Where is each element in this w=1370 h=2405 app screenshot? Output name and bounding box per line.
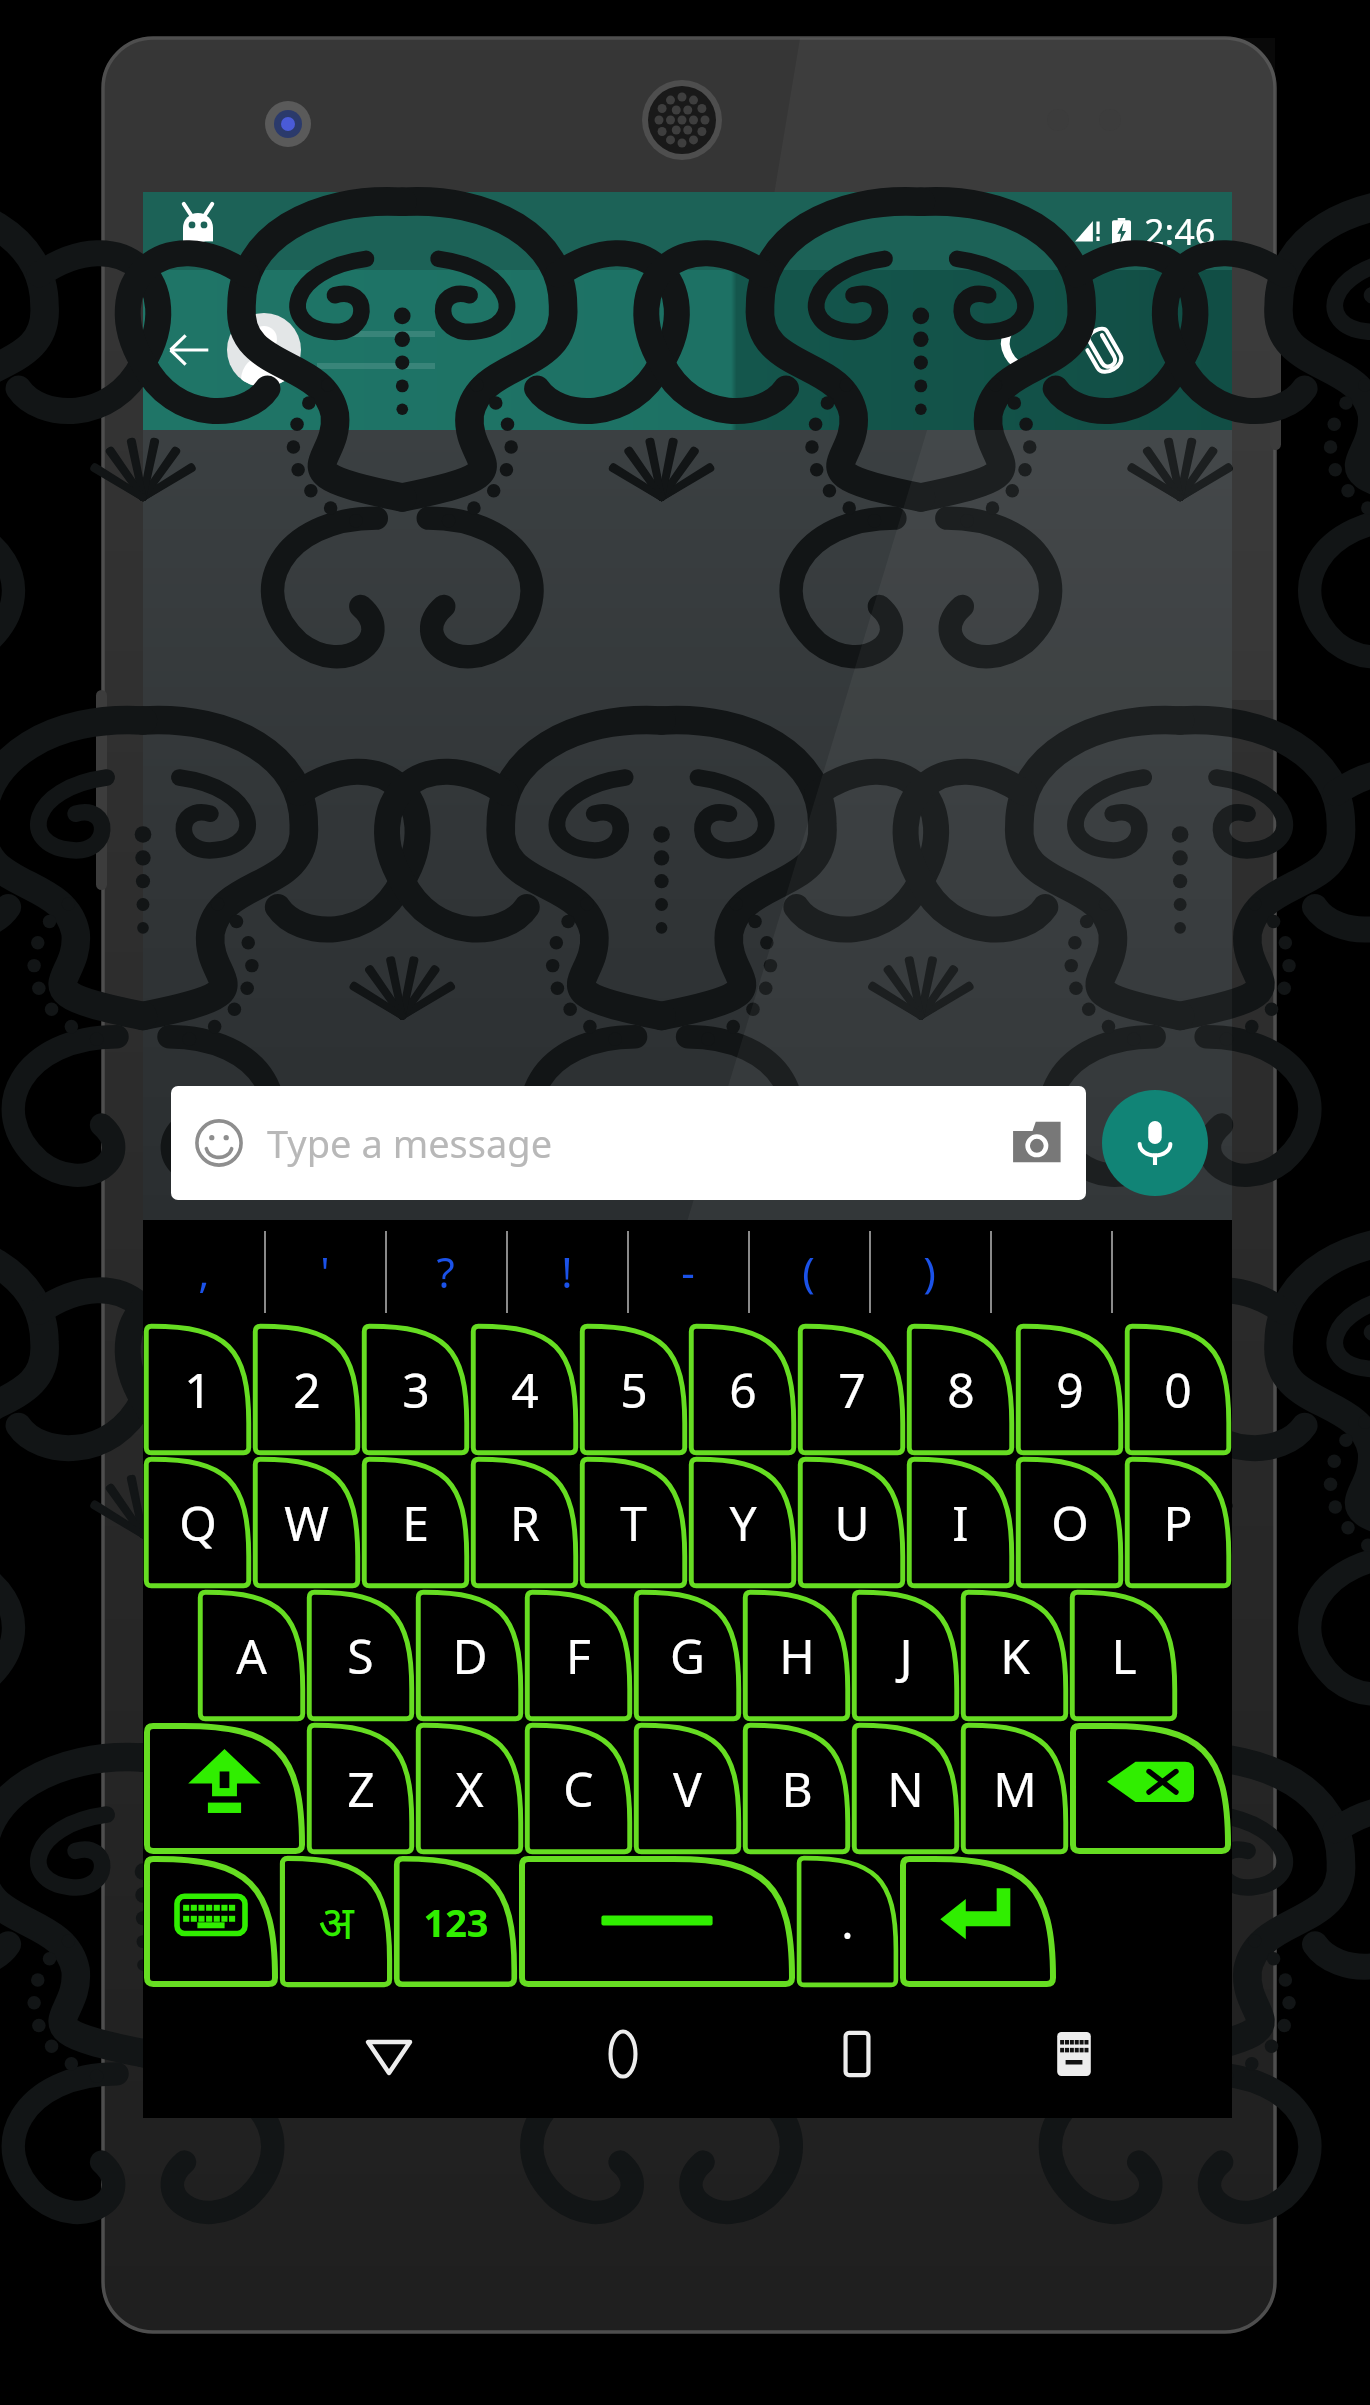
staticText: B [781, 1756, 813, 1821]
staticText: P [1163, 1490, 1193, 1555]
button[interactable]: 4 [470, 1323, 579, 1456]
button[interactable]: E [361, 1456, 470, 1589]
button[interactable]: F [524, 1589, 633, 1722]
button[interactable]: J [851, 1589, 960, 1722]
staticText: ) [923, 1243, 936, 1300]
button[interactable]: U [797, 1456, 906, 1589]
button[interactable]: T [579, 1456, 688, 1589]
button[interactable]: Type a message [171, 1086, 1086, 1200]
staticText: ' [320, 1243, 330, 1300]
staticText: 5 [620, 1357, 648, 1422]
button[interactable]: ( [748, 1220, 869, 1323]
button[interactable]: - [627, 1220, 748, 1323]
button[interactable]: R [470, 1456, 579, 1589]
button[interactable]: Back [151, 312, 227, 388]
button[interactable]: . [796, 1855, 899, 1988]
button[interactable]: A [197, 1589, 306, 1722]
staticText: A [236, 1623, 267, 1688]
button[interactable]: H [742, 1589, 851, 1722]
button[interactable]: 9 [1015, 1323, 1124, 1456]
staticText: W [284, 1490, 329, 1555]
staticText: Type a message [267, 1117, 1012, 1169]
button[interactable]: Space [518, 1855, 796, 1988]
button[interactable]: ' [264, 1220, 385, 1323]
staticText: ! [561, 1243, 573, 1300]
button[interactable]: ) [869, 1220, 990, 1323]
staticText: 1 [184, 1357, 212, 1422]
button[interactable]: 1 [143, 1323, 252, 1456]
staticText: T [620, 1490, 647, 1555]
button[interactable]: N [851, 1722, 960, 1855]
staticText: O [1051, 1490, 1089, 1555]
button[interactable]: More options [1148, 313, 1222, 387]
staticText: Y [729, 1490, 757, 1555]
staticText: K [1000, 1623, 1030, 1688]
button[interactable] [990, 1220, 1111, 1323]
button[interactable]: Attach [1062, 307, 1148, 393]
button[interactable]: Shift [143, 1722, 306, 1855]
button[interactable]: Switch keyboard [974, 1990, 1173, 2118]
button[interactable]: Contact photo [227, 313, 301, 387]
button[interactable]: , [143, 1220, 264, 1323]
staticText: H [779, 1623, 815, 1688]
staticText: 3 [402, 1357, 430, 1422]
button[interactable]: Y [688, 1456, 797, 1589]
button[interactable]: ? [385, 1220, 506, 1323]
button[interactable]: O [1015, 1456, 1124, 1589]
button[interactable]: S [306, 1589, 415, 1722]
button[interactable]: D [415, 1589, 524, 1722]
button[interactable]: K [960, 1589, 1069, 1722]
staticText: C [563, 1756, 594, 1821]
staticText: 123 [423, 1896, 489, 1948]
button[interactable]: M [960, 1722, 1069, 1855]
staticText: अ [318, 1890, 354, 1953]
staticText: N [887, 1756, 924, 1821]
button[interactable]: अ [279, 1855, 393, 1988]
button[interactable]: 2 [252, 1323, 361, 1456]
button[interactable]: Call [976, 307, 1062, 393]
staticText: U [834, 1490, 870, 1555]
button[interactable]: Recent apps [740, 1990, 974, 2118]
button[interactable]: Voice message [1102, 1090, 1208, 1196]
button[interactable]: Back [272, 1990, 506, 2118]
staticText: 2 [293, 1357, 321, 1422]
button[interactable]: V [633, 1722, 742, 1855]
button[interactable]: Home [506, 1990, 740, 2118]
button[interactable]: C [524, 1722, 633, 1855]
staticText: , [198, 1243, 210, 1300]
button[interactable]: Backspace [1069, 1722, 1232, 1855]
button[interactable]: 5 [579, 1323, 688, 1456]
button[interactable]: 7 [797, 1323, 906, 1456]
button[interactable]: I [906, 1456, 1015, 1589]
button[interactable]: 123 [393, 1855, 518, 1988]
staticText: - [681, 1243, 695, 1300]
button[interactable]: 6 [688, 1323, 797, 1456]
staticText: 7 [838, 1357, 866, 1422]
staticText: 0 [1164, 1357, 1192, 1422]
staticText: 2:46 [1144, 207, 1216, 256]
staticText: 4 [511, 1357, 539, 1422]
button[interactable]: G [633, 1589, 742, 1722]
button[interactable]: 3 [361, 1323, 470, 1456]
staticText: Z [347, 1756, 375, 1821]
staticText: D [452, 1623, 488, 1688]
button[interactable]: W [252, 1456, 361, 1589]
button[interactable]: Z [306, 1722, 415, 1855]
staticText: ( [802, 1243, 815, 1300]
button[interactable]: L [1069, 1589, 1178, 1722]
button[interactable]: Keyboard settings [143, 1855, 279, 1988]
staticText: S [347, 1623, 374, 1688]
button[interactable] [1111, 1220, 1232, 1323]
button[interactable]: B [742, 1722, 851, 1855]
staticText: I [952, 1490, 969, 1555]
staticText: M [993, 1756, 1037, 1821]
button[interactable]: Enter [899, 1855, 1057, 1988]
button[interactable]: 8 [906, 1323, 1015, 1456]
button[interactable]: ! [506, 1220, 627, 1323]
staticText: V [673, 1756, 702, 1821]
button[interactable]: 0 [1124, 1323, 1232, 1456]
button[interactable]: X [415, 1722, 524, 1855]
button[interactable]: P [1124, 1456, 1232, 1589]
staticText: X [455, 1756, 484, 1821]
button[interactable]: Q [143, 1456, 252, 1589]
